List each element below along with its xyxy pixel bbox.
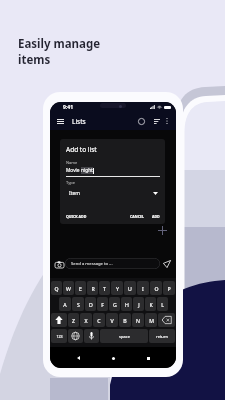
button[interactable]: Menu [54, 115, 66, 127]
button[interactable]: V [106, 313, 118, 327]
staticText: L [161, 301, 164, 308]
button[interactable]: Sort [151, 116, 162, 127]
button[interactable]: Recents [141, 351, 155, 365]
button[interactable]: ADD [152, 214, 160, 219]
button[interactable]: X [80, 313, 92, 327]
button[interactable]: Z [68, 313, 79, 327]
button[interactable]: Item [66, 187, 160, 199]
staticText: Item [69, 190, 80, 197]
button[interactable]: F [97, 297, 108, 311]
staticText: N [136, 317, 140, 324]
button[interactable]: 123 [51, 329, 67, 343]
staticText: A [63, 301, 67, 308]
button[interactable]: Send a message to ... [65, 258, 160, 269]
staticText: return [156, 334, 168, 339]
button[interactable]: Search [135, 115, 148, 128]
staticText: Easily manage [18, 36, 101, 52]
button[interactable]: K [145, 297, 156, 311]
staticText: I [142, 285, 144, 292]
button[interactable]: S [72, 297, 84, 311]
button[interactable]: I [137, 281, 149, 295]
button[interactable]: Backspace [158, 313, 175, 327]
staticText: QUICK ADD [66, 214, 87, 219]
staticText: Add to list [66, 145, 97, 154]
staticText: Send a message to ... [71, 261, 113, 267]
staticText: K [149, 301, 153, 308]
button[interactable]: H [121, 297, 132, 311]
staticText: 123 [56, 334, 63, 339]
staticText: ADD [152, 214, 160, 219]
button[interactable]: M [145, 313, 157, 327]
button[interactable]: Q [51, 281, 62, 295]
staticText: S [77, 301, 80, 308]
staticText: Lists [72, 117, 86, 126]
button[interactable]: A [59, 297, 71, 311]
staticText: night [81, 167, 93, 174]
staticText: X [84, 317, 88, 324]
button[interactable]: Send [160, 257, 173, 270]
button[interactable]: R [87, 281, 98, 295]
staticText: H [125, 301, 129, 308]
staticText: D [89, 301, 93, 308]
button[interactable]: space [100, 329, 148, 343]
staticText: CANCEL [130, 214, 145, 219]
staticText: Q [54, 285, 59, 292]
staticText: G [113, 301, 117, 308]
staticText: W [66, 285, 71, 292]
button[interactable]: Language [68, 329, 83, 343]
button[interactable]: B [119, 313, 131, 327]
button[interactable]: Camera [53, 258, 65, 270]
button[interactable]: T [99, 281, 110, 295]
button[interactable]: E [75, 281, 86, 295]
button[interactable]: O [150, 281, 162, 295]
staticText: V [110, 317, 114, 324]
button[interactable]: return [149, 329, 175, 343]
button[interactable]: Y [111, 281, 123, 295]
button[interactable]: Add [154, 222, 170, 238]
staticText: M [149, 317, 154, 324]
staticText: E [79, 285, 82, 292]
button[interactable]: P [163, 281, 175, 295]
staticText: U [128, 285, 132, 292]
button[interactable]: C [93, 313, 105, 327]
staticText: O [154, 285, 159, 292]
staticText: R [91, 285, 95, 292]
button[interactable]: CANCEL [130, 214, 145, 219]
staticText: T [103, 285, 106, 292]
staticText: Z [72, 317, 75, 324]
button[interactable]: Voice input [84, 329, 99, 343]
staticText: 9:41 [63, 104, 73, 111]
button[interactable]: L [157, 297, 168, 311]
button[interactable]: U [124, 281, 136, 295]
staticText: C [97, 317, 101, 324]
button[interactable]: D [85, 297, 96, 311]
button[interactable]: Back [71, 351, 85, 365]
button[interactable]: G [109, 297, 120, 311]
staticText: Type [66, 180, 75, 185]
button[interactable]: More options [162, 116, 172, 126]
button[interactable]: N [132, 313, 144, 327]
button[interactable]: W [63, 281, 74, 295]
button[interactable]: Shift [51, 313, 67, 327]
staticText: Movie [66, 167, 81, 174]
staticText: space [119, 334, 130, 339]
button[interactable]: Home [106, 351, 120, 365]
button[interactable]: QUICK ADD [66, 214, 87, 219]
button[interactable]: J [133, 297, 144, 311]
staticText: F [101, 301, 104, 308]
staticText: Name [66, 160, 78, 165]
staticText: P [167, 285, 171, 292]
staticText: J [138, 301, 140, 308]
staticText: Y [116, 285, 119, 292]
staticText: items [18, 52, 51, 68]
staticText: B [123, 317, 127, 324]
